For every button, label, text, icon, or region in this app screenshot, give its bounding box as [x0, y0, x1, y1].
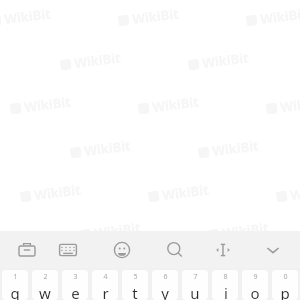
button[interactable]: 6 — [152, 270, 178, 300]
staticText: WikiBit — [289, 180, 300, 204]
staticText: WikiBit — [73, 48, 122, 72]
button[interactable]: 9 — [242, 270, 268, 300]
staticText: u — [190, 283, 200, 300]
button[interactable]: 4 — [92, 270, 118, 300]
staticText: WikiBit — [33, 180, 82, 204]
staticText: WikiBit — [201, 48, 250, 72]
staticText: WikiBit — [211, 136, 260, 160]
button[interactable]: 8 — [212, 270, 238, 300]
staticText: q — [10, 283, 20, 300]
button[interactable]: 3 — [62, 270, 88, 300]
staticText: 7 — [193, 272, 198, 282]
button[interactable]: 1 — [2, 270, 28, 300]
staticText: 1 — [13, 272, 18, 282]
staticText: 2 — [43, 272, 48, 282]
staticText: y — [161, 283, 169, 300]
staticText: o — [250, 283, 260, 300]
staticText: WikiBit — [221, 218, 270, 242]
button[interactable]: Keyboard layout — [49, 231, 87, 268]
button[interactable]: Search — [156, 231, 194, 268]
button[interactable]: 0 — [272, 270, 298, 300]
button[interactable]: Clipboard — [8, 231, 46, 268]
staticText: WikiBit — [83, 136, 132, 160]
staticText: 6 — [163, 272, 168, 282]
staticText: 0 — [283, 272, 288, 282]
staticText: WikiBit — [259, 4, 300, 28]
button[interactable]: 2 — [32, 270, 58, 300]
staticText: 4 — [103, 272, 108, 282]
staticText: i — [224, 283, 228, 300]
staticText: 9 — [253, 272, 258, 282]
staticText: p — [280, 283, 290, 300]
button[interactable]: Hide keyboard — [254, 231, 292, 268]
staticText: w — [39, 283, 51, 300]
staticText: e — [71, 283, 80, 300]
button[interactable]: 5 — [122, 270, 148, 300]
staticText: 8 — [223, 272, 228, 282]
button[interactable]: 7 — [182, 270, 208, 300]
staticText: WikiBit — [161, 180, 210, 204]
staticText: r — [102, 283, 109, 300]
staticText: WikiBit — [151, 92, 200, 116]
staticText: t — [132, 283, 138, 300]
staticText: WikiBit — [3, 4, 52, 28]
staticText: WikiBit — [93, 218, 142, 242]
staticText: 5 — [133, 272, 138, 282]
staticText: WikiBit — [279, 92, 300, 116]
staticText: 3 — [73, 272, 78, 282]
staticText: WikiBit — [23, 92, 72, 116]
staticText: WikiBit — [131, 4, 180, 28]
button[interactable]: Text editing — [204, 231, 242, 268]
button[interactable]: Emoji — [103, 231, 141, 268]
